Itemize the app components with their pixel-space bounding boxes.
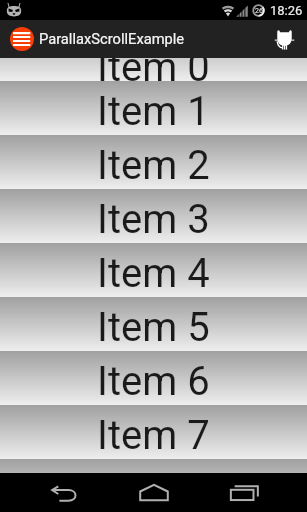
button[interactable]: Item 3 [0, 189, 307, 243]
button[interactable]: Item 2 [0, 135, 307, 189]
button[interactable]: Home [109, 473, 198, 512]
button[interactable]: Menu [10, 27, 34, 51]
staticText: 18:26 [270, 3, 303, 18]
button[interactable]: Item 8 [0, 459, 307, 473]
staticText: 26 [255, 7, 263, 15]
staticText: Item 3 [97, 196, 210, 243]
button[interactable]: Item 1 [0, 81, 307, 135]
staticText: Item 0 [97, 58, 210, 91]
staticText: Item 2 [97, 142, 210, 189]
button[interactable]: Recents [200, 473, 289, 512]
button[interactable]: GitHub [261, 20, 307, 58]
staticText: Item 7 [97, 412, 210, 459]
button[interactable]: Item 4 [0, 243, 307, 297]
button[interactable]: Item 0 [0, 58, 307, 81]
staticText: Item 1 [97, 88, 210, 135]
staticText: Item 8 [97, 466, 210, 473]
staticText: Item 4 [97, 250, 210, 297]
staticText: Item 6 [97, 358, 210, 405]
button[interactable]: Item 5 [0, 297, 307, 351]
button[interactable]: Back [20, 473, 109, 512]
staticText: ParallaxScrollExample [39, 30, 185, 47]
staticText: Item 5 [97, 304, 210, 351]
button[interactable]: Item 6 [0, 351, 307, 405]
button[interactable]: Item 7 [0, 405, 307, 459]
